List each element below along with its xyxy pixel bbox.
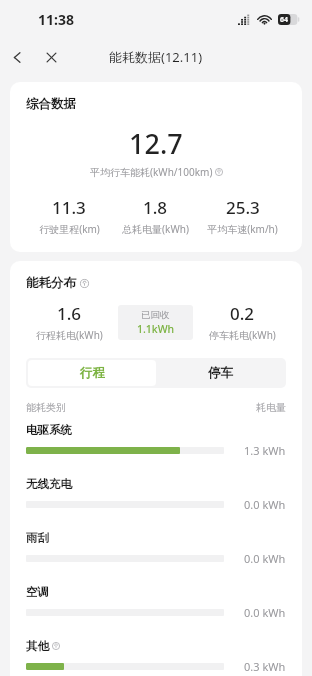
staticText: 能耗数据(12.11) — [109, 48, 203, 66]
staticText: 能耗分布 — [26, 275, 76, 291]
staticText: 综合数据 — [26, 96, 76, 112]
staticText: 0.0 kWh — [244, 605, 286, 620]
staticText: 11.3 — [52, 196, 86, 219]
staticText: 能耗类别 — [26, 401, 66, 414]
staticText: 12.7 — [129, 125, 183, 162]
staticText: 电驱系统 — [26, 423, 72, 437]
staticText: 已回收 — [141, 309, 170, 321]
staticText: 行程 — [80, 365, 105, 381]
staticText: 1.6 — [57, 302, 82, 325]
staticText: 无线充电 — [26, 477, 72, 491]
staticText: 雨刮 — [26, 531, 49, 545]
staticText: 0.0 kWh — [244, 497, 286, 512]
staticText: 空调 — [26, 585, 49, 599]
staticText: 0.2 — [230, 302, 255, 325]
staticText: 0.0 kWh — [244, 551, 286, 566]
staticText: 其他 — [26, 639, 49, 653]
button[interactable]: 停车 — [156, 360, 284, 386]
staticText: 行驶里程(km) — [39, 222, 100, 236]
button[interactable]: Back — [0, 40, 34, 74]
staticText: 平均行车能耗(kWh/100km) — [90, 165, 213, 179]
button[interactable]: 无线充电 — [26, 477, 286, 531]
staticText: 25.3 — [226, 196, 260, 219]
button[interactable]: Close — [34, 40, 68, 74]
staticText: 11:38 — [38, 10, 74, 29]
staticText: 1.8 — [143, 196, 168, 219]
button[interactable]: 其他 — [26, 639, 286, 676]
staticText: 1.3 kWh — [244, 443, 286, 458]
staticText: 1.1kWh — [137, 322, 175, 336]
staticText: 停车耗电(kWh) — [209, 328, 276, 342]
staticText: 总耗电量(kWh) — [122, 222, 189, 236]
staticText: 停车 — [208, 365, 233, 381]
staticText: 耗电量 — [256, 401, 286, 414]
staticText: 0.3 kWh — [244, 659, 286, 674]
staticText: 64 — [280, 15, 289, 25]
button[interactable]: 电驱系统 — [26, 423, 286, 477]
button[interactable]: 空调 — [26, 585, 286, 639]
staticText: 行程耗电(kWh) — [36, 328, 103, 342]
staticText: 平均车速(km/h) — [207, 222, 278, 236]
button[interactable]: 行程 — [28, 360, 156, 386]
button[interactable]: 雨刮 — [26, 531, 286, 585]
